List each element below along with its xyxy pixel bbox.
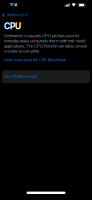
staticText: CPU bbox=[4, 21, 21, 31]
staticText: Geekbench 6 bbox=[7, 13, 28, 17]
staticText: Learn more about the CPU Benchmark. bbox=[4, 58, 67, 62]
staticText: Run CPU Benchmark bbox=[5, 75, 37, 79]
staticText: 17:14 bbox=[10, 3, 17, 7]
button[interactable]: Run CPU Benchmark bbox=[2, 70, 90, 83]
button[interactable]: Learn more about the CPU Benchmark. bbox=[4, 58, 88, 62]
staticText: Geekbench measures CPU performance for e… bbox=[4, 33, 87, 54]
button[interactable]: Geekbench 6 bbox=[0, 10, 92, 20]
